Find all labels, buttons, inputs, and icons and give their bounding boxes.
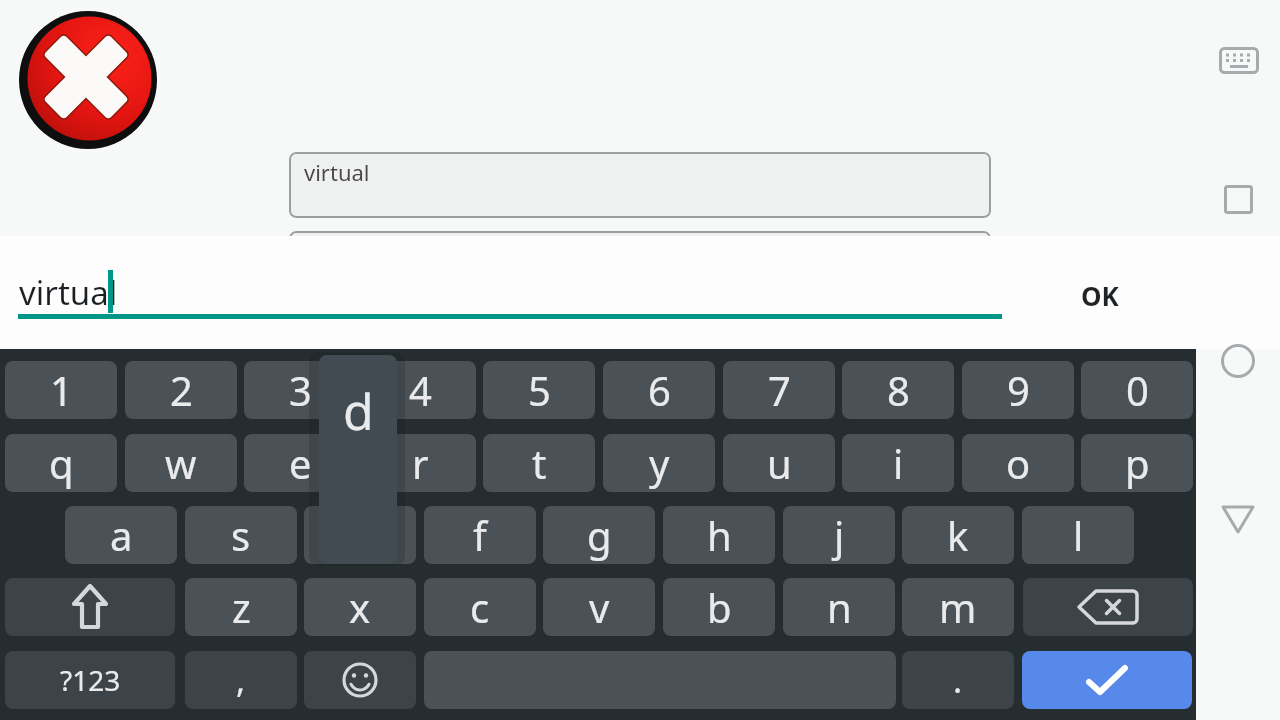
button[interactable]: [304, 506, 416, 564]
staticText: 4: [409, 363, 432, 417]
staticText: p: [1125, 436, 1150, 490]
staticText: 6: [648, 363, 671, 417]
button[interactable]: 1: [5, 361, 117, 419]
button[interactable]: b: [663, 578, 775, 636]
button[interactable]: f: [424, 506, 536, 564]
staticText: b: [707, 580, 732, 634]
staticText: k: [947, 508, 969, 562]
staticText: g: [587, 508, 612, 562]
staticText: d: [343, 377, 374, 445]
button[interactable]: c: [424, 578, 536, 636]
button[interactable]: u: [723, 434, 835, 492]
button[interactable]: [5, 578, 175, 636]
staticText: i: [893, 436, 904, 490]
staticText: virtual: [304, 157, 370, 187]
staticText: x: [349, 580, 371, 634]
staticText: 7: [768, 363, 791, 417]
button[interactable]: 6: [603, 361, 715, 419]
staticText: ,: [236, 657, 246, 703]
staticText: w: [165, 436, 197, 490]
staticText: o: [1006, 436, 1031, 490]
staticText: virtual: [19, 270, 118, 315]
staticText: u: [767, 436, 792, 490]
button[interactable]: 0: [1081, 361, 1193, 419]
button[interactable]: d: [319, 355, 397, 564]
staticText: e: [289, 436, 312, 490]
button[interactable]: p: [1081, 434, 1193, 492]
staticText: t: [532, 436, 547, 490]
staticText: c: [470, 580, 490, 634]
button[interactable]: o: [962, 434, 1074, 492]
button[interactable]: q: [5, 434, 117, 492]
staticText: m: [939, 580, 977, 634]
button[interactable]: [1224, 185, 1253, 214]
button[interactable]: v: [543, 578, 655, 636]
staticText: 8: [887, 363, 910, 417]
staticText: OK: [1081, 278, 1119, 313]
staticText: q: [49, 436, 74, 490]
button[interactable]: .: [902, 651, 1014, 709]
button[interactable]: k: [902, 506, 1014, 564]
button[interactable]: m: [902, 578, 1014, 636]
button[interactable]: 9: [962, 361, 1074, 419]
button[interactable]: 3: [244, 361, 356, 419]
button[interactable]: a: [65, 506, 177, 564]
button[interactable]: j: [783, 506, 895, 564]
button[interactable]: z: [185, 578, 297, 636]
staticText: r: [412, 436, 429, 490]
button[interactable]: 8: [842, 361, 954, 419]
staticText: j: [834, 508, 845, 562]
button[interactable]: 7: [723, 361, 835, 419]
button[interactable]: [1221, 505, 1255, 535]
staticText: 3: [289, 363, 312, 417]
button[interactable]: virtual: [289, 152, 991, 218]
staticText: z: [232, 580, 251, 634]
button[interactable]: l: [1022, 506, 1134, 564]
button[interactable]: OK: [1060, 270, 1140, 320]
staticText: 1: [50, 363, 73, 417]
button[interactable]: x: [304, 578, 416, 636]
staticText: f: [473, 508, 487, 562]
staticText: v: [589, 580, 610, 634]
staticText: ?123: [60, 661, 121, 699]
button[interactable]: 5: [483, 361, 595, 419]
button[interactable]: 4: [364, 361, 476, 419]
staticText: s: [231, 508, 251, 562]
button[interactable]: h: [663, 506, 775, 564]
button[interactable]: e: [244, 434, 356, 492]
staticText: 0: [1126, 363, 1149, 417]
button[interactable]: ?123: [5, 651, 175, 709]
staticText: 9: [1007, 363, 1030, 417]
staticText: y: [649, 436, 670, 490]
button[interactable]: t: [483, 434, 595, 492]
button[interactable]: [1023, 578, 1193, 636]
staticText: 2: [170, 363, 193, 417]
button[interactable]: w: [125, 434, 237, 492]
button[interactable]: [304, 651, 416, 709]
button[interactable]: g: [543, 506, 655, 564]
staticText: n: [827, 580, 852, 634]
button[interactable]: n: [783, 578, 895, 636]
staticText: 5: [528, 363, 551, 417]
staticText: .: [953, 657, 963, 703]
button[interactable]: [1219, 47, 1259, 74]
button[interactable]: s: [185, 506, 297, 564]
button[interactable]: i: [842, 434, 954, 492]
button[interactable]: [1022, 651, 1192, 709]
button[interactable]: ,: [185, 651, 297, 709]
button[interactable]: r: [364, 434, 476, 492]
staticText: a: [110, 508, 133, 562]
button[interactable]: [1221, 344, 1255, 378]
staticText: l: [1073, 508, 1084, 562]
button[interactable]: y: [603, 434, 715, 492]
button[interactable]: 2: [125, 361, 237, 419]
staticText: h: [707, 508, 732, 562]
